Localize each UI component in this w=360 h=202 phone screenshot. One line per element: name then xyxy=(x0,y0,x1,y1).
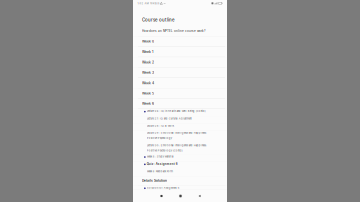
staticText: Positive Psychology (Contd) xyxy=(147,149,183,152)
button[interactable]: Lecture 30: Emotional Intelligence and H… xyxy=(133,143,227,154)
staticText: Week 2 xyxy=(142,60,154,64)
staticText: Lecture 26: IQ in Health and Well Being … xyxy=(147,110,206,113)
button[interactable]: Week 6: Study Material xyxy=(133,154,227,161)
staticText: Lecture 28: IQ at Work xyxy=(147,124,174,127)
button[interactable]: Week 6 xyxy=(133,99,227,109)
staticText: Week 1 xyxy=(142,50,153,54)
staticText: How does an NPTEL online course work? xyxy=(142,29,206,33)
staticText: Week 5 xyxy=(142,91,154,95)
staticText: Positive Psychology xyxy=(147,137,172,140)
staticText: Week 6: Study Material xyxy=(147,155,174,158)
button[interactable]: Week 6 Feedback Form xyxy=(133,169,227,176)
button[interactable]: Week 1 xyxy=(133,47,227,57)
button[interactable]: Recent apps xyxy=(152,190,171,201)
button[interactable]: Lecture 26: IQ in Health and Well Being … xyxy=(133,109,227,116)
staticText: Lecture 30: Emotional Intelligence and H… xyxy=(147,144,207,147)
button[interactable]: Week 4 xyxy=(133,78,227,88)
button[interactable]: Lecture 28: IQ at Work xyxy=(133,123,227,131)
staticText: Week 3 xyxy=(142,71,154,75)
button[interactable]: Lecture 27: IQ and Cultural Adjustment xyxy=(133,116,227,123)
button[interactable]: Lecture 29: Emotional Intelligence and H… xyxy=(133,131,227,143)
button[interactable]: Quiz: Assignment 6 xyxy=(133,161,227,169)
staticText: Week 4 xyxy=(142,81,154,85)
button[interactable]: Details Solution xyxy=(133,176,227,185)
staticText: Course outline xyxy=(142,17,175,23)
button[interactable]: Week 5 xyxy=(133,88,227,99)
staticText: Week 6 Feedback Form xyxy=(147,170,173,173)
staticText: Quiz: Assignment 6 xyxy=(147,162,178,166)
button[interactable]: Week 0 xyxy=(133,36,227,47)
button[interactable]: Week 3 xyxy=(133,68,227,78)
button[interactable]: Home xyxy=(171,190,190,201)
staticText: Lecture 27: IQ and Cultural Adjustment xyxy=(147,117,192,120)
staticText: Solution for Assignment 6 xyxy=(147,186,180,189)
staticText: 10KB/s xyxy=(150,2,159,5)
button[interactable]: Back xyxy=(190,190,209,201)
staticText: Week 0 xyxy=(142,39,154,43)
button[interactable]: How does an NPTEL online course work? xyxy=(133,26,227,36)
button[interactable]: Solution for Assignment 6 xyxy=(133,185,227,190)
staticText: Lecture 29: Emotional Intelligence and H… xyxy=(147,131,207,134)
staticText: Details Solution xyxy=(142,179,167,183)
staticText: Week 6 xyxy=(142,102,154,106)
staticText: 1:02 AM xyxy=(138,2,149,5)
button[interactable]: Week 2 xyxy=(133,57,227,68)
